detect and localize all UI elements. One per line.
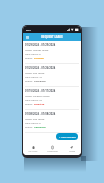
button[interactable]: 01/08/2024 - 01/08/2024 bbox=[23, 110, 81, 133]
staticText: Leave bbox=[69, 150, 75, 153]
button[interactable]: Open navigation menu bbox=[25, 35, 30, 40]
staticText: Cancelled bbox=[34, 79, 46, 82]
staticText: Total Hours: 8 bbox=[25, 52, 41, 55]
button[interactable]: 01/15/2024 - 01/17/2024 bbox=[23, 87, 81, 110]
staticText: REQUEST LEAVE bbox=[41, 35, 63, 39]
staticText: Leave: Sick Leave bbox=[25, 71, 45, 74]
staticText: 01/15/2024 - 01/17/2024 bbox=[25, 89, 56, 93]
staticText: 9:41 bbox=[26, 28, 31, 31]
staticText: Status: bbox=[25, 102, 34, 105]
staticText: 01/25/2024 - 01/26/2024 bbox=[25, 66, 56, 70]
staticText: Status: bbox=[25, 56, 34, 59]
staticText: + New Request bbox=[59, 135, 76, 138]
staticText: Leave: Vacation Leave bbox=[25, 94, 50, 97]
button[interactable]: Leave bbox=[62, 143, 81, 155]
staticText: 01/08/2024 - 01/08/2024 bbox=[25, 112, 56, 116]
staticText: Leave: Sick Leave bbox=[25, 117, 45, 120]
staticText: Total Hours: 16 bbox=[25, 75, 42, 78]
staticText: Status: bbox=[25, 79, 34, 82]
staticText: My Work bbox=[28, 150, 38, 153]
staticText: Status: bbox=[25, 125, 34, 128]
staticText: Pending bbox=[34, 56, 44, 59]
staticText: Total Hours: 8 bbox=[25, 121, 41, 124]
staticText: Timesheet bbox=[47, 150, 58, 153]
button[interactable]: + New Request bbox=[56, 133, 78, 140]
staticText: 01/29/2024 - 01/29/2024 bbox=[25, 43, 56, 47]
button[interactable]: My Work bbox=[23, 143, 43, 155]
staticText: Approved bbox=[34, 125, 46, 128]
button[interactable]: Timesheet bbox=[43, 143, 62, 155]
staticText: Rejected bbox=[34, 102, 45, 105]
staticText: Leave: Holiday Leave bbox=[25, 48, 49, 51]
button[interactable]: 01/25/2024 - 01/26/2024 bbox=[23, 64, 81, 87]
staticText: Total Hours: 24 bbox=[25, 98, 42, 101]
button[interactable]: 01/29/2024 - 01/29/2024 bbox=[23, 41, 81, 64]
